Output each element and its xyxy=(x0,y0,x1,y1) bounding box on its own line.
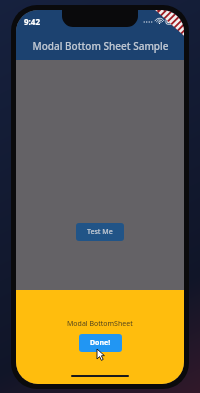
staticText: Modal BottomSheet xyxy=(67,319,133,329)
staticText: 9:42 xyxy=(24,16,40,27)
button[interactable]: Test Me xyxy=(76,223,124,241)
staticText: Modal Bottom Sheet Sample xyxy=(32,39,169,53)
staticText: Test Me xyxy=(87,227,113,237)
other: Recording indicator xyxy=(144,10,184,40)
staticText: Done! xyxy=(90,338,111,348)
button[interactable]: Done! xyxy=(79,334,122,352)
